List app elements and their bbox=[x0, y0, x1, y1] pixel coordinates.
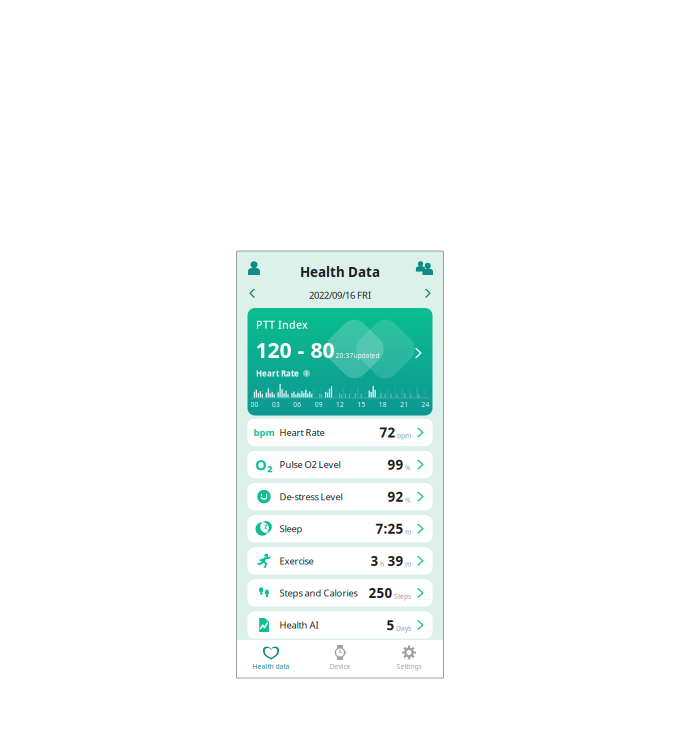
staticText: 15 bbox=[357, 400, 365, 409]
staticText: 20:37updated bbox=[335, 351, 379, 360]
staticText: Sleep bbox=[279, 522, 302, 535]
staticText: 18 bbox=[379, 400, 387, 409]
button[interactable]: Steps and Calories bbox=[247, 579, 432, 606]
staticText: % bbox=[405, 495, 411, 504]
staticText: Heart Rate bbox=[256, 368, 299, 379]
staticText: 3 bbox=[370, 552, 378, 570]
staticText: Exercise bbox=[279, 555, 313, 567]
staticText: 03 bbox=[272, 400, 280, 409]
staticText: z bbox=[264, 522, 267, 531]
staticText: De-stress Level bbox=[279, 490, 342, 503]
staticText: 09 bbox=[315, 400, 323, 409]
button[interactable]: Health data bbox=[236, 640, 305, 678]
staticText: 06 bbox=[293, 400, 301, 409]
button[interactable]: O₂ bbox=[247, 451, 432, 478]
staticText: Heart Rate bbox=[279, 426, 324, 439]
staticText: 72 bbox=[379, 423, 395, 441]
staticText: Health AI bbox=[279, 619, 318, 631]
staticText: Days bbox=[396, 624, 411, 633]
button[interactable]: z bbox=[247, 515, 432, 542]
staticText: i bbox=[305, 370, 307, 377]
staticText: Steps and Calories bbox=[279, 587, 357, 599]
button[interactable]: De-stress Level bbox=[247, 483, 432, 510]
staticText: 00 bbox=[250, 400, 258, 409]
staticText: bpm bbox=[253, 426, 274, 439]
staticText: 39 bbox=[387, 552, 403, 570]
staticText: Pulse O2 Level bbox=[279, 458, 340, 471]
staticText: O₂ bbox=[255, 455, 273, 474]
staticText: 120 - 80 bbox=[255, 335, 334, 364]
button[interactable]: Settings bbox=[374, 640, 443, 678]
staticText: 12 bbox=[336, 400, 344, 409]
staticText: % bbox=[405, 463, 411, 472]
button[interactable]: Health AI bbox=[247, 611, 432, 639]
staticText: Device bbox=[329, 662, 350, 671]
staticText: 250 bbox=[368, 584, 392, 602]
button[interactable]: Next day bbox=[414, 283, 443, 303]
staticText: 21 bbox=[400, 400, 408, 409]
staticText: Settings bbox=[396, 662, 421, 671]
staticText: PTT Index bbox=[256, 317, 308, 332]
staticText: 2022/09/16 FRI bbox=[309, 289, 371, 301]
staticText: m bbox=[405, 527, 411, 536]
button[interactable]: Exercise bbox=[247, 547, 432, 574]
staticText: Steps bbox=[394, 592, 411, 601]
button[interactable]: Previous day bbox=[236, 283, 265, 303]
button[interactable]: PTT Index bbox=[247, 308, 432, 415]
staticText: Health data bbox=[252, 662, 289, 671]
staticText: 24 bbox=[421, 400, 429, 409]
staticText: 7:25 bbox=[375, 520, 403, 537]
staticText: m bbox=[405, 560, 411, 568]
staticText: bpm bbox=[397, 431, 411, 440]
button[interactable]: bpm bbox=[247, 419, 432, 446]
staticText: h bbox=[380, 560, 384, 568]
staticText: 92 bbox=[387, 488, 403, 505]
staticText: z bbox=[267, 527, 270, 534]
button[interactable]: Friends bbox=[406, 251, 443, 281]
button[interactable]: Profile bbox=[236, 251, 269, 281]
button[interactable]: Device bbox=[305, 640, 374, 678]
staticText: Health Data bbox=[300, 263, 380, 281]
staticText: 99 bbox=[387, 456, 403, 473]
staticText: 5 bbox=[386, 616, 394, 634]
